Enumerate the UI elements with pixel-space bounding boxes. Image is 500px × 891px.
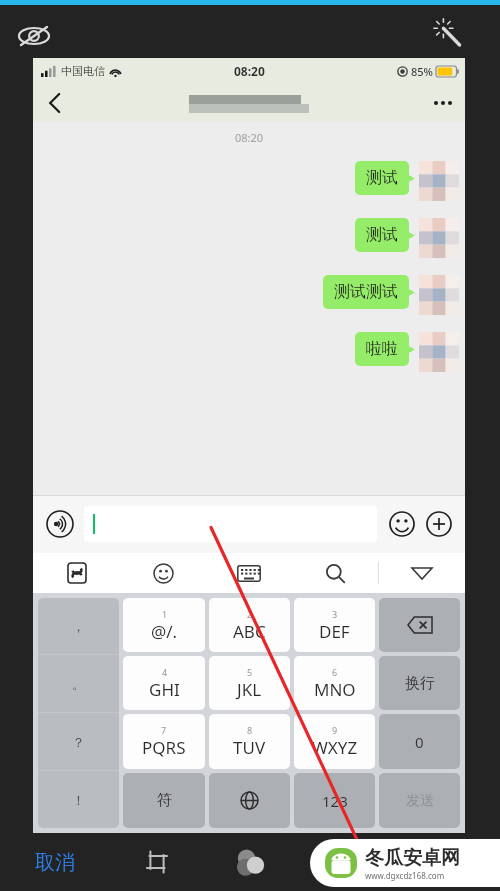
staticText: 0 — [415, 732, 424, 752]
staticText: 8 — [247, 724, 253, 736]
button[interactable]: 5 — [209, 656, 290, 710]
staticText: 测试 — [366, 225, 398, 245]
button[interactable]: 1 — [123, 598, 205, 652]
staticText: 9 — [332, 724, 338, 736]
staticText: 测试 — [366, 168, 398, 188]
staticText: DEF — [319, 620, 350, 643]
staticText: 08:20 — [234, 63, 265, 79]
staticText: GHI — [149, 678, 180, 701]
staticText: 啦啦 — [366, 339, 398, 359]
button[interactable]: 0 — [379, 714, 460, 769]
button[interactable]: 123 — [294, 773, 375, 828]
button[interactable]: Add — [423, 508, 455, 540]
button[interactable]: 取消 — [0, 833, 110, 891]
button[interactable]: 发送 — [379, 773, 460, 828]
button[interactable]: ！ — [38, 771, 119, 828]
button[interactable]: Emoji — [120, 553, 206, 593]
button[interactable]: Filters — [204, 833, 297, 891]
button[interactable]: Adjust — [297, 833, 390, 891]
button[interactable]: Hide — [12, 14, 56, 58]
button[interactable]: 测试测试 — [323, 275, 415, 309]
button[interactable]: Magic — [428, 14, 472, 58]
staticText: 5 — [247, 666, 253, 678]
button[interactable]: 8 — [209, 714, 290, 769]
staticText: ABC — [233, 620, 266, 643]
button[interactable]: 3 — [294, 598, 375, 652]
button[interactable]: 6 — [294, 656, 375, 710]
button[interactable]: Delete — [379, 598, 460, 652]
button[interactable]: More — [421, 84, 465, 122]
button[interactable]: Crop — [110, 833, 204, 891]
staticText: 123 — [322, 791, 348, 811]
staticText: ， — [72, 618, 85, 634]
staticText: 08:20 — [33, 130, 465, 145]
staticText: PQRS — [142, 736, 186, 759]
button[interactable]: Sogou — [33, 553, 120, 593]
staticText: 7 — [161, 724, 167, 736]
staticText: WXYZ — [312, 736, 358, 759]
staticText: 取消 — [35, 850, 75, 875]
staticText: www.dgxcdz168.com — [365, 870, 445, 881]
button[interactable]: Voice — [43, 507, 77, 541]
button[interactable]: Keyboard — [206, 553, 292, 593]
button[interactable]: 测试 — [355, 218, 415, 252]
button[interactable]: Back — [33, 84, 77, 122]
button[interactable]: 9 — [294, 714, 375, 769]
button[interactable]: 2 — [209, 598, 290, 652]
staticText: 发送 — [406, 792, 434, 810]
staticText: TUV — [233, 736, 266, 759]
staticText: 。 — [72, 676, 85, 692]
staticText: 测试测试 — [334, 282, 398, 302]
staticText: 1 — [162, 608, 168, 620]
staticText: 4 — [162, 666, 168, 678]
button[interactable]: Collapse — [379, 553, 465, 593]
staticText: 冬瓜安卓网 — [365, 846, 460, 870]
staticText: MNO — [314, 678, 356, 701]
button[interactable]: 测试 — [355, 161, 415, 195]
button[interactable]: 符 — [123, 773, 205, 828]
staticText: JKL — [237, 678, 262, 701]
button[interactable]: 7 — [123, 714, 205, 769]
staticText: @/. — [151, 620, 178, 643]
staticText: 6 — [332, 666, 338, 678]
staticText: ？ — [72, 734, 85, 750]
staticText: ！ — [72, 792, 85, 808]
button[interactable]: Language — [209, 773, 290, 828]
button[interactable]: 4 — [123, 656, 205, 710]
staticText: 3 — [332, 608, 338, 620]
staticText: 2 — [247, 608, 253, 620]
staticText: 符 — [157, 791, 172, 810]
staticText: 中国电信 — [61, 64, 105, 78]
button[interactable]: Search — [292, 553, 378, 593]
button[interactable]: ？ — [38, 713, 119, 770]
staticText: 换行 — [405, 674, 435, 693]
button[interactable]: Emoji — [386, 508, 418, 540]
button[interactable]: 啦啦 — [355, 332, 415, 366]
button[interactable]: 换行 — [379, 656, 460, 710]
button[interactable] — [84, 506, 377, 542]
staticText: 85% — [411, 64, 433, 79]
